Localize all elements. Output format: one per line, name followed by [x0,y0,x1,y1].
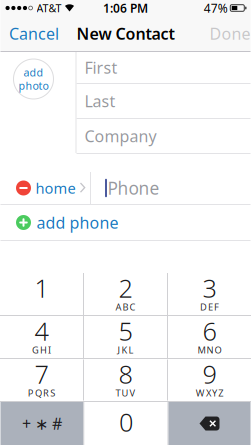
staticText: 9 [202,357,216,391]
staticText: Done [209,23,250,44]
staticText: 1 [34,271,48,305]
button[interactable]: + ∗ # [0,402,83,445]
staticText: JKL [117,344,134,356]
button[interactable]: 1 [0,273,83,315]
staticText: PQRS [28,387,55,399]
staticText: 3 [202,271,216,305]
button[interactable]: Done [209,23,250,44]
button[interactable]: Delete [168,402,250,445]
staticText: 8 [118,357,132,391]
button[interactable]: 7 [0,359,83,401]
staticText: add [23,65,43,79]
staticText: 6 [202,314,216,348]
staticText: New Contact [76,23,174,44]
button[interactable]: Last [76,84,250,118]
button[interactable]: add phone [0,205,250,240]
staticText: 1:06 PM [103,0,148,16]
button[interactable]: 8 [84,359,167,401]
staticText: 4 [34,314,48,348]
staticText: Last [84,90,115,112]
button[interactable]: add photo [13,59,53,99]
button[interactable]: 5 [84,316,167,358]
button[interactable]: 2 [84,273,167,315]
button[interactable]: home [31,178,90,198]
staticText: 2 [118,271,132,305]
staticText: DEF [200,301,219,313]
button[interactable]: 3 [168,273,251,315]
staticText: Phone [107,176,159,199]
staticText: add phone [36,212,118,233]
button[interactable]: Cancel [9,23,59,44]
staticText: Cancel [9,23,59,44]
button[interactable]: 0 [84,402,167,445]
staticText: home [35,178,75,198]
button[interactable]: 6 [168,316,251,358]
staticText: 0 [119,405,133,439]
staticText: First [84,57,117,78]
staticText: 5 [118,314,132,348]
button[interactable]: 4 [0,316,83,358]
staticText: ABC [115,301,136,313]
staticText: AT&T [36,1,61,15]
staticText: WXYZ [196,387,223,399]
button[interactable]: Delete phone [0,180,31,195]
button[interactable]: 9 [168,359,251,401]
staticText: 47% [204,0,228,16]
button[interactable]: Company [76,119,250,153]
staticText: photo [18,78,48,93]
staticText: Company [84,125,156,147]
staticText: TUV [115,387,136,399]
staticText: MNO [197,344,222,356]
staticText: + ∗ # [22,413,62,434]
button[interactable]: First [76,52,250,83]
button[interactable]: Phone [91,176,250,199]
staticText: 7 [34,357,48,391]
staticText: GHI [32,344,51,356]
